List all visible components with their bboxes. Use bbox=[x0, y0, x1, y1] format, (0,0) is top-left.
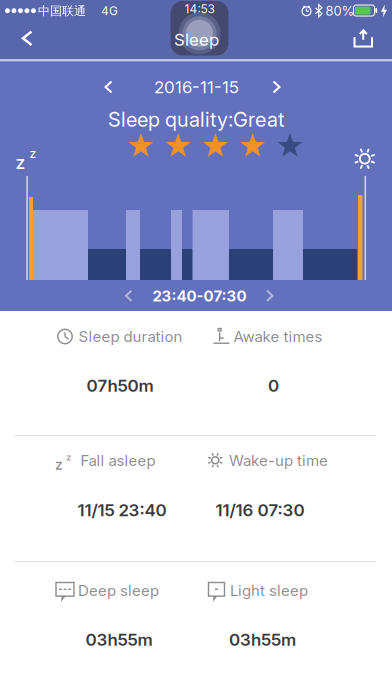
staticText: Sleep bbox=[174, 29, 219, 50]
staticText: Sleep duration bbox=[78, 328, 182, 345]
staticText: z bbox=[55, 456, 63, 473]
staticText: 03h55m bbox=[85, 629, 152, 650]
button[interactable] bbox=[0, 0, 5, 10]
staticText: 23:40-07:30 bbox=[152, 287, 246, 305]
staticText: 11/15 23:40 bbox=[77, 500, 166, 520]
button[interactable] bbox=[0, 0, 8, 13]
staticText: 03h55m bbox=[229, 629, 296, 650]
staticText: 4G bbox=[101, 4, 118, 18]
staticText: 80% bbox=[325, 3, 354, 19]
staticText: Deep sleep bbox=[78, 582, 159, 599]
staticText: Fall asleep bbox=[80, 452, 155, 469]
staticText: Wake-up time bbox=[229, 452, 328, 469]
button[interactable] bbox=[0, 0, 6, 11]
button[interactable] bbox=[0, 0, 6, 11]
staticText: 中国联通 bbox=[38, 4, 86, 18]
staticText: 11/16 07:30 bbox=[215, 500, 304, 520]
staticText: 0 bbox=[268, 375, 279, 396]
staticText: 2016-11-15 bbox=[154, 77, 239, 97]
staticText: Light sleep bbox=[230, 582, 308, 599]
staticText: 14:53 bbox=[184, 2, 214, 16]
staticText: 07h50m bbox=[86, 375, 153, 396]
staticText: z bbox=[29, 146, 36, 161]
staticText: z bbox=[15, 152, 25, 173]
staticText: z bbox=[66, 452, 71, 463]
staticText: Sleep quality:Great bbox=[108, 108, 284, 131]
staticText: Awake times bbox=[233, 328, 322, 345]
button[interactable] bbox=[0, 0, 17, 16]
button[interactable] bbox=[0, 0, 5, 10]
